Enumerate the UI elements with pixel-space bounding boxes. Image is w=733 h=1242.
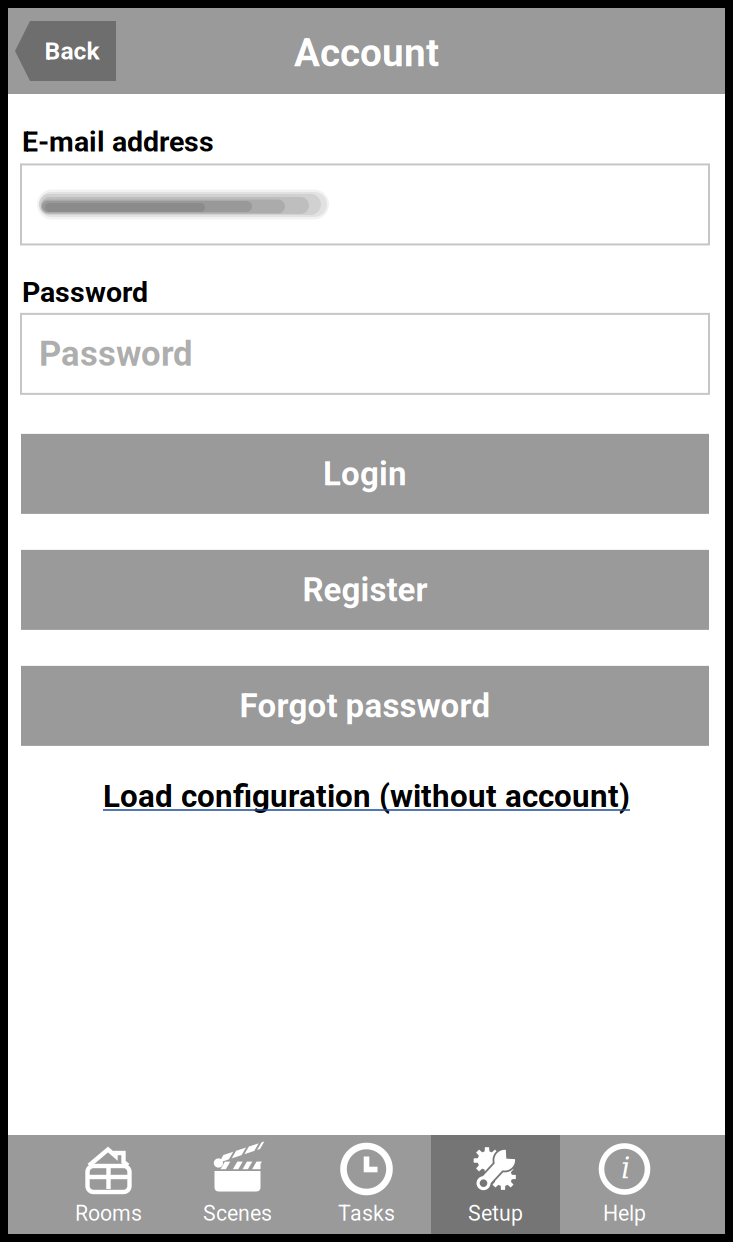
staticText: Back — [44, 36, 99, 65]
staticText: Rooms — [75, 1201, 142, 1226]
staticText: Tasks — [338, 1201, 395, 1226]
staticText: Password — [39, 334, 193, 374]
button[interactable]: Load configuration (without account) — [8, 766, 725, 827]
staticText: E-mail address — [22, 125, 214, 158]
staticText: Scenes — [203, 1201, 272, 1226]
staticText: Forgot password — [239, 686, 490, 725]
button[interactable]: Setup — [431, 1135, 560, 1234]
staticText: Login — [323, 454, 407, 493]
button[interactable]: Rooms — [44, 1135, 173, 1234]
button[interactable]: Register — [21, 550, 709, 630]
staticText: Register — [302, 570, 427, 609]
button[interactable]: Scenes — [173, 1135, 302, 1234]
button[interactable]: Login — [21, 434, 709, 514]
staticText: Password — [22, 275, 148, 309]
button[interactable]: Tasks — [302, 1135, 431, 1234]
staticText: Help — [603, 1201, 646, 1226]
button[interactable]: Forgot password — [21, 666, 709, 746]
staticText: Setup — [468, 1201, 523, 1226]
staticText: Account — [294, 30, 439, 76]
staticText: i — [621, 1151, 630, 1185]
staticText: Load configuration (without account) — [103, 778, 630, 815]
button[interactable]: Back — [15, 21, 116, 81]
button[interactable]: i — [560, 1135, 689, 1234]
